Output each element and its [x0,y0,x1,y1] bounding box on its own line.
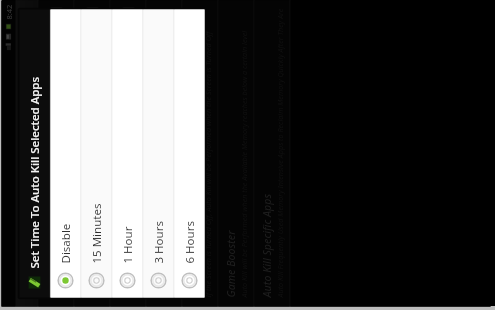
button[interactable]: Ignore List [146,0,181,306]
button[interactable]: Auto Kill Specific Apps [254,0,289,306]
other: Enabled [85,7,99,21]
staticText: 3 Hours [150,220,166,263]
staticText: Show a Notification Icon in the Status B… [58,164,68,297]
button[interactable]: 15 Minutes [81,9,111,297]
button[interactable]: 3 Hours [143,9,173,297]
button[interactable]: Navigate up [15,0,37,306]
staticText: Disable [57,223,73,263]
staticText: Show Task Killer On Notification Bar [79,126,93,297]
button[interactable]: Disable [50,9,80,297]
staticText: Advanced Task Manager Pro [20,156,33,285]
staticText: Auto Start at Start-Up [115,194,129,297]
staticText: If the Screen is Turned Off, Auto Kill w… [202,31,212,297]
other: Enabled [121,7,135,21]
button[interactable]: 6 Hours [174,9,204,297]
button[interactable]: Show Task Killer On Notification Bar [74,0,109,306]
staticText: 1 Hour [119,226,135,263]
button[interactable]: 1 Hour [112,9,142,297]
staticText: 15 Minutes [88,203,104,263]
staticText: Show Notifications [43,208,57,297]
staticText: Select the Applications to Ignore and no… [166,148,176,297]
staticText: 6 Hours [181,220,197,263]
staticText: 8:42 [3,4,13,19]
button[interactable]: Show Notifications [38,0,73,306]
staticText: Set Time To Auto Kill Selected Apps [26,76,42,268]
staticText: Ignore List [151,246,165,297]
staticText: Perform Screen Off Kill [187,189,201,297]
button[interactable]: Auto Start at Start-Up [110,0,145,306]
staticText: Game Booster [223,229,237,297]
staticText: Adds a One-Touch Task Killer to the Noti… [94,133,104,297]
staticText: Start the Service Automatically When the… [130,126,140,297]
staticText: Auto Kill Specific Apps [259,193,273,297]
button[interactable]: Perform Screen Off Kill [182,0,217,306]
other: Enabled [49,7,63,21]
